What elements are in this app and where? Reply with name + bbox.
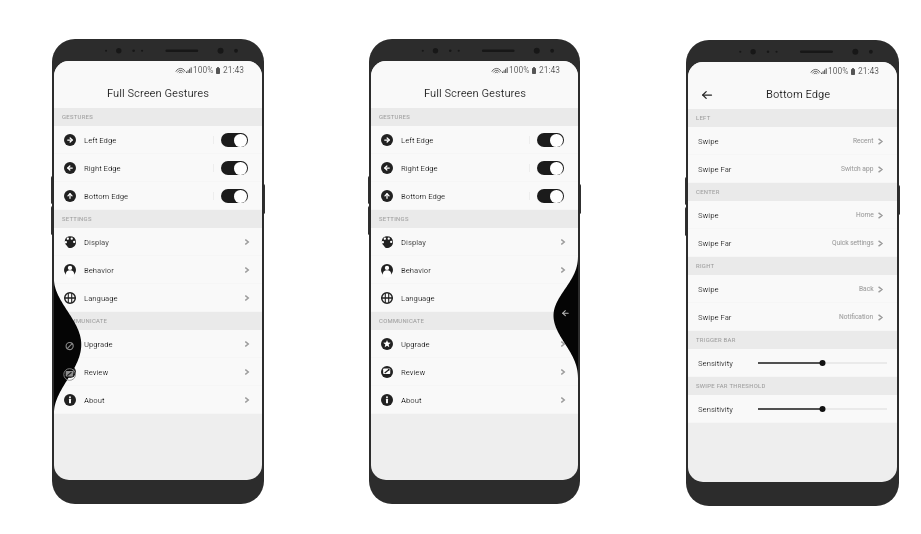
staticText: Display bbox=[401, 238, 426, 247]
staticText: 100% bbox=[509, 65, 530, 75]
button[interactable]: Sensitivity slider bbox=[758, 402, 887, 416]
staticText: Review bbox=[84, 368, 109, 377]
button[interactable]: Behavior bbox=[371, 256, 578, 284]
button[interactable]: Swipe bbox=[688, 275, 897, 303]
button[interactable]: Display bbox=[371, 228, 578, 256]
staticText: Behavior bbox=[84, 266, 114, 275]
staticText: 21:43 bbox=[539, 65, 560, 75]
staticText: Right Edge bbox=[401, 164, 438, 173]
button[interactable]: Left Edge bbox=[54, 126, 262, 154]
staticText: SWIPE FAR THRESHOLD bbox=[696, 383, 766, 390]
staticText: Language bbox=[84, 294, 118, 303]
button[interactable]: Right Edge bbox=[371, 154, 578, 182]
staticText: Bottom Edge bbox=[84, 192, 129, 201]
button[interactable]: Bottom Edge bbox=[54, 182, 262, 210]
staticText: Right Edge bbox=[84, 164, 121, 173]
staticText: About bbox=[401, 396, 422, 405]
button[interactable]: Bottom Edge bbox=[371, 182, 578, 210]
staticText: Home bbox=[856, 211, 874, 219]
button[interactable]: Language bbox=[371, 284, 578, 312]
button[interactable]: Swipe Far bbox=[688, 303, 897, 331]
staticText: Language bbox=[401, 294, 435, 303]
staticText: Notification bbox=[839, 313, 874, 321]
staticText: COMMUNICATE bbox=[379, 318, 425, 325]
staticText: Display bbox=[84, 238, 109, 247]
staticText: Switch app bbox=[841, 165, 874, 173]
button[interactable]: Review bbox=[54, 358, 262, 386]
button[interactable]: Upgrade bbox=[54, 330, 262, 358]
staticText: LEFT bbox=[696, 115, 711, 122]
staticText: COMMUNICATE bbox=[62, 318, 108, 325]
staticText: Bottom Edge bbox=[766, 88, 831, 101]
staticText: Swipe Far bbox=[698, 165, 732, 174]
staticText: 100% bbox=[193, 65, 214, 75]
staticText: Behavior bbox=[401, 266, 431, 275]
staticText: GESTURES bbox=[379, 114, 411, 121]
staticText: Sensitivity bbox=[698, 405, 733, 414]
staticText: About bbox=[84, 396, 105, 405]
staticText: Upgrade bbox=[84, 340, 113, 349]
button[interactable]: Upgrade bbox=[371, 330, 578, 358]
staticText: Bottom Edge bbox=[401, 192, 446, 201]
staticText: Quick settings bbox=[832, 239, 874, 247]
staticText: TRIGGER BAR bbox=[696, 337, 736, 344]
button[interactable]: Review bbox=[371, 358, 578, 386]
staticText: Swipe bbox=[698, 137, 719, 146]
staticText: Left Edge bbox=[401, 136, 434, 145]
staticText: Full Screen Gestures bbox=[107, 87, 209, 100]
staticText: Review bbox=[401, 368, 426, 377]
button[interactable]: Display bbox=[54, 228, 262, 256]
staticText: CENTER bbox=[696, 189, 720, 196]
button[interactable]: About bbox=[371, 386, 578, 414]
staticText: 21:43 bbox=[858, 66, 879, 76]
button[interactable]: Swipe bbox=[688, 201, 897, 229]
button[interactable]: Swipe Far bbox=[688, 155, 897, 183]
button[interactable]: Behavior bbox=[54, 256, 262, 284]
staticText: 21:43 bbox=[223, 65, 244, 75]
staticText: RIGHT bbox=[696, 263, 715, 270]
staticText: Swipe Far bbox=[698, 239, 732, 248]
staticText: Upgrade bbox=[401, 340, 430, 349]
staticText: Swipe bbox=[698, 211, 719, 220]
button[interactable]: About bbox=[54, 386, 262, 414]
button[interactable]: Sensitivity slider bbox=[758, 356, 887, 370]
staticText: Swipe Far bbox=[698, 313, 732, 322]
staticText: Recent bbox=[853, 137, 874, 145]
staticText: Left Edge bbox=[84, 136, 117, 145]
button[interactable]: Back bbox=[695, 83, 718, 106]
staticText: Back bbox=[859, 285, 874, 293]
button[interactable]: Right Edge bbox=[54, 154, 262, 182]
button[interactable]: Swipe Far bbox=[688, 229, 897, 257]
staticText: Sensitivity bbox=[698, 359, 733, 368]
button[interactable]: Swipe bbox=[688, 127, 897, 155]
staticText: GESTURES bbox=[62, 114, 94, 121]
staticText: Full Screen Gestures bbox=[424, 87, 526, 100]
button[interactable]: Language bbox=[54, 284, 262, 312]
staticText: SETTINGS bbox=[62, 216, 92, 223]
staticText: 100% bbox=[828, 66, 849, 76]
button[interactable]: Left Edge bbox=[371, 126, 578, 154]
staticText: Swipe bbox=[698, 285, 719, 294]
staticText: SETTINGS bbox=[379, 216, 409, 223]
